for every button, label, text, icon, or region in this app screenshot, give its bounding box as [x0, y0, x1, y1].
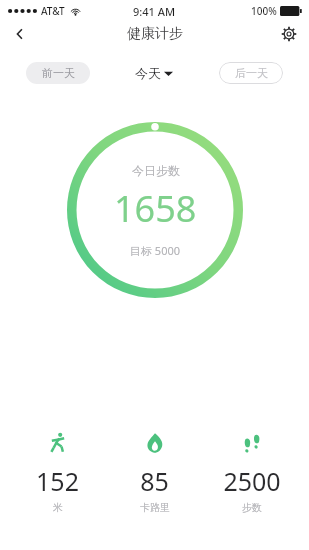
button[interactable]: 2500: [204, 428, 299, 516]
button[interactable]: Back: [0, 22, 40, 46]
staticText: 今日步数: [132, 163, 180, 178]
button[interactable]: 152: [10, 428, 105, 516]
button[interactable]: 85: [107, 428, 202, 516]
button[interactable]: 今天: [131, 63, 177, 83]
staticText: 1658: [114, 184, 197, 233]
staticText: 前一天: [42, 66, 75, 80]
button[interactable]: 后一天: [219, 62, 283, 84]
staticText: 健康计步: [127, 25, 183, 43]
staticText: AT&T: [41, 4, 65, 18]
staticText: 目标 5000: [130, 243, 181, 258]
staticText: 152: [36, 464, 79, 498]
staticText: 9:41 AM: [133, 4, 176, 19]
button[interactable]: Settings: [269, 22, 309, 46]
staticText: 步数: [242, 501, 262, 514]
staticText: 后一天: [235, 66, 268, 80]
button[interactable]: 前一天: [26, 62, 90, 84]
staticText: 今天: [135, 65, 161, 81]
staticText: 卡路里: [140, 501, 170, 514]
staticText: 85: [140, 464, 169, 498]
staticText: 米: [53, 501, 63, 514]
staticText: 2500: [223, 464, 281, 498]
staticText: 100%: [251, 4, 277, 18]
